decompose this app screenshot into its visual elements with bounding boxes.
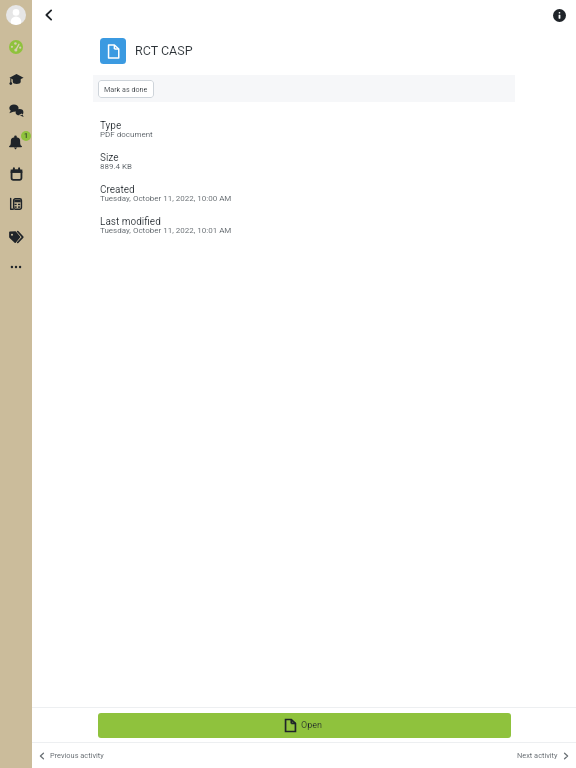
staticText: Next activity <box>517 751 558 760</box>
staticText: Mark as done <box>104 85 148 93</box>
button[interactable]: Information <box>548 4 570 26</box>
staticText: Tuesday, October 11, 2022, 10:00 AM <box>100 194 232 203</box>
button[interactable]: Calendar <box>0 164 32 184</box>
button[interactable]: Tags <box>0 226 32 246</box>
button[interactable]: Messages <box>0 100 32 120</box>
button[interactable]: Open <box>98 713 511 738</box>
staticText: Previous activity <box>50 751 104 760</box>
button[interactable]: Grades <box>0 194 32 214</box>
staticText: Last modified <box>100 216 161 228</box>
staticText: 1 <box>24 132 29 140</box>
staticText: Open <box>301 720 322 731</box>
button[interactable]: Back <box>38 4 60 26</box>
staticText: Created <box>100 184 135 196</box>
staticText: Size <box>100 152 119 164</box>
staticText: Type <box>100 120 122 132</box>
staticText: 889.4 KB <box>100 162 133 171</box>
button[interactable]: Dashboard <box>0 37 32 57</box>
button[interactable]: More <box>0 257 32 277</box>
staticText: PDF document <box>100 130 153 139</box>
button[interactable]: Mark as done <box>98 80 154 98</box>
button[interactable]: Courses <box>0 68 32 88</box>
staticText: RCT CASP <box>135 43 193 58</box>
staticText: Tuesday, October 11, 2022, 10:01 AM <box>100 226 232 235</box>
button[interactable]: Notifications <box>0 131 32 151</box>
button[interactable]: Next activity <box>514 747 573 764</box>
button[interactable]: Profile <box>0 5 32 25</box>
button[interactable]: Previous activity <box>35 747 107 764</box>
